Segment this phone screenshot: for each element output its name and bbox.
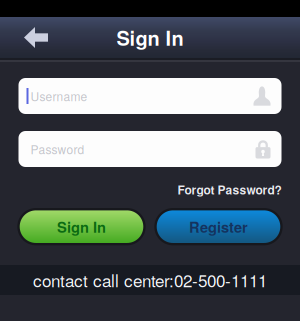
staticText: Forgot Password?: [177, 181, 281, 198]
staticText: Password: [30, 140, 84, 158]
staticText: Register: [189, 216, 248, 237]
button[interactable]: Forgot Password?: [177, 181, 281, 198]
button[interactable]: Register: [155, 209, 281, 244]
button[interactable]: Sign In: [18, 209, 144, 244]
staticText: Username: [30, 87, 87, 105]
staticText: Sign In: [57, 216, 106, 237]
staticText: contact call center:02-500-1111: [33, 268, 267, 292]
button[interactable]: Back: [0, 17, 60, 58]
staticText: Sign In: [116, 23, 183, 52]
